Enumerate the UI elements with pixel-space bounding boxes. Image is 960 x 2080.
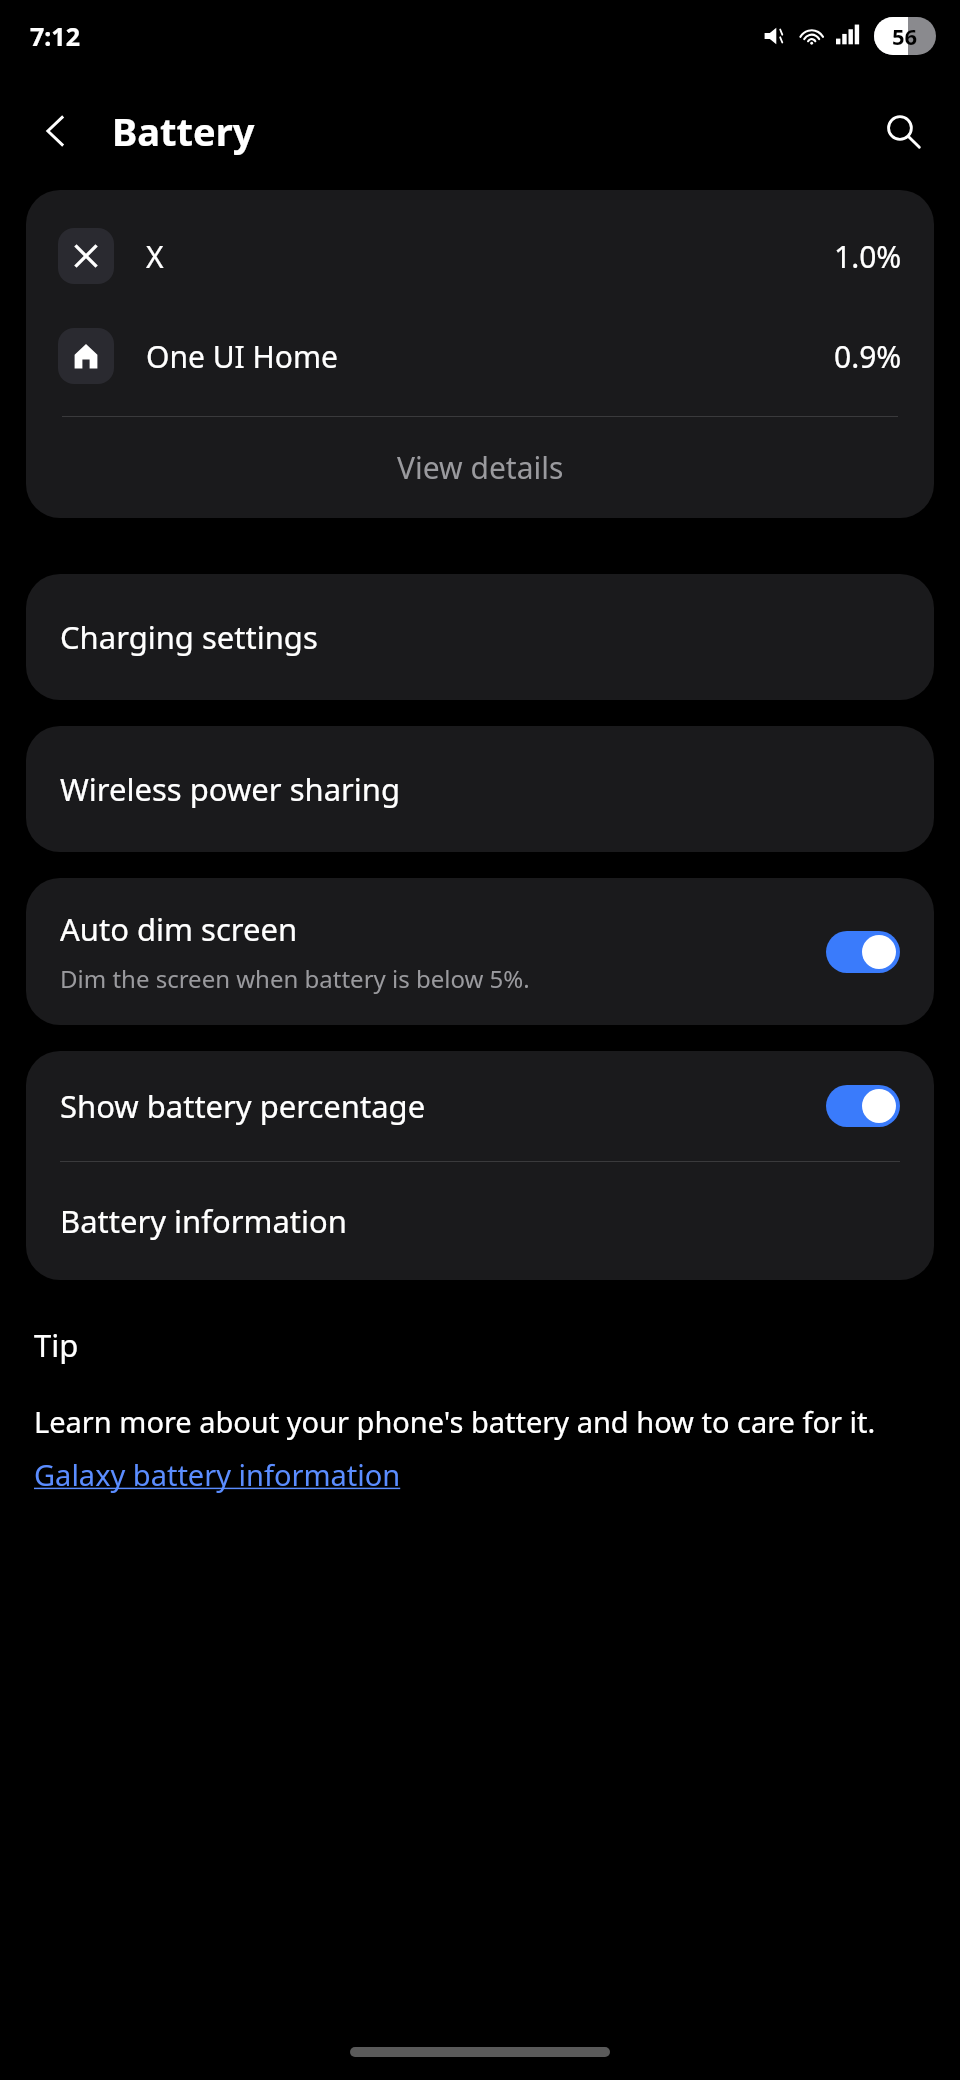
staticText: 0.9% (834, 336, 902, 377)
button[interactable] (826, 1085, 900, 1127)
staticText: Galaxy battery information (34, 1455, 401, 1494)
staticText: Show battery percentage (60, 1085, 810, 1127)
staticText: Tip (34, 1324, 79, 1366)
button[interactable]: Wireless power sharing (26, 726, 934, 852)
staticText: X (146, 236, 164, 277)
button[interactable]: Auto dim screen (26, 878, 934, 1025)
staticText: 56 (892, 21, 918, 51)
button[interactable]: X (26, 214, 934, 298)
button[interactable]: Search (872, 100, 934, 162)
staticText: Battery (112, 105, 255, 157)
staticText: Battery information (60, 1200, 347, 1242)
staticText: Auto dim screen (60, 908, 298, 950)
staticText: Dim the screen when battery is below 5%. (60, 962, 530, 995)
staticText: View details (397, 447, 564, 488)
button[interactable]: Galaxy battery information (34, 1455, 401, 1494)
staticText: 7:12 (30, 19, 80, 53)
staticText: Learn more about your phone's battery an… (34, 1402, 876, 1441)
staticText: Wireless power sharing (60, 768, 401, 810)
staticText: One UI Home (146, 336, 338, 377)
button[interactable] (826, 931, 900, 973)
button[interactable]: Back (26, 101, 86, 161)
staticText: 1.0% (834, 236, 902, 277)
button[interactable]: Battery information (26, 1162, 934, 1280)
button[interactable]: View details (26, 417, 934, 518)
button[interactable]: Charging settings (26, 574, 934, 700)
staticText: Charging settings (60, 616, 318, 658)
button[interactable]: One UI Home (26, 314, 934, 398)
button[interactable]: Show battery percentage (26, 1051, 934, 1161)
